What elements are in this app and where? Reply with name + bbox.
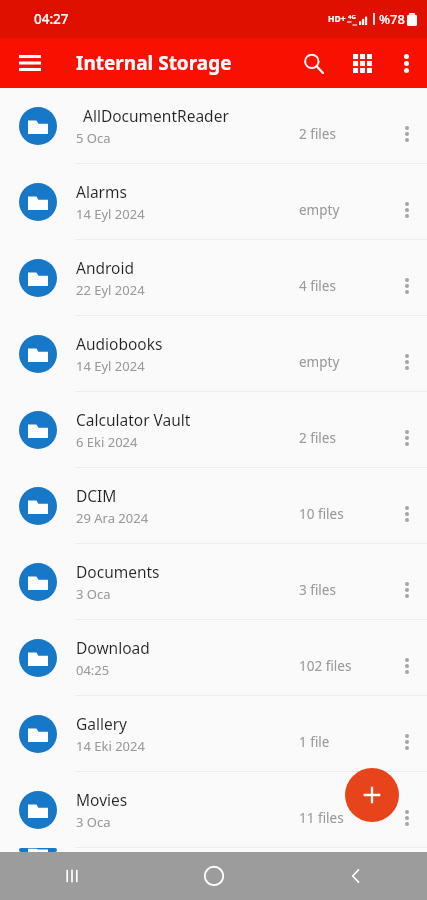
staticText: 102 files [299,657,352,675]
button[interactable]: Search [291,41,335,85]
button[interactable]: Item options [387,620,427,695]
staticText: 6 Eki 2024 [76,433,138,451]
staticText: Internal Storage [76,50,232,76]
staticText: empty [299,201,340,219]
button[interactable]: Audiobooks [0,316,427,391]
button[interactable]: Item options [387,88,427,163]
button[interactable]: Recents [0,852,143,900]
staticText: 3 Oca [76,585,111,603]
staticText: 3 Oca [76,813,111,831]
button[interactable]: Android [0,240,427,315]
staticText: 4G [348,13,356,21]
button[interactable]: Item options [387,468,427,543]
button[interactable]: Item options [387,392,427,467]
staticText: 2 files [299,125,336,143]
staticText: Documents [76,561,160,582]
staticText: 04:27 [34,10,69,28]
staticText: 4 files [299,277,336,295]
staticText: Audiobooks [76,333,163,354]
button[interactable]: Calculator Vault [0,392,427,467]
button[interactable]: Alarms [0,164,427,239]
staticText: 11 files [299,809,344,827]
staticText: 5 Oca [76,129,111,147]
button[interactable]: AllDocumentReader [0,88,427,163]
button[interactable]: Item options [387,544,427,619]
button[interactable]: Movies [0,772,427,847]
staticText: 3 files [299,581,336,599]
button[interactable]: More options [385,42,427,84]
button[interactable]: Gallery [0,696,427,771]
staticText: 22 Eyl 2024 [76,281,145,299]
staticText: Movies [76,789,128,810]
button[interactable]: Open navigation drawer [10,43,50,83]
button[interactable]: Music [0,848,427,852]
staticText: %78 [379,10,405,28]
staticText: 29 Ara 2024 [76,509,149,527]
staticText: 14 Eyl 2024 [76,205,145,223]
staticText: 14 Eki 2024 [76,737,145,755]
button[interactable]: Item options [387,164,427,239]
staticText: AllDocumentReader [83,105,229,126]
button[interactable]: Documents [0,544,427,619]
staticText: 1 file [299,733,330,751]
staticText: 14 Eyl 2024 [76,357,145,375]
button[interactable]: Grid view [340,41,384,85]
staticText: DCIM [76,485,117,506]
staticText: empty [299,353,340,371]
staticText: 10 files [299,505,344,523]
button[interactable]: Item options [387,772,427,847]
staticText: HD+ [328,13,346,25]
button[interactable]: Download [0,620,427,695]
staticText: Download [76,637,150,658]
staticText: Android [76,257,135,278]
button[interactable]: DCIM [0,468,427,543]
button[interactable]: Back [285,852,427,900]
staticText: 2 files [299,429,336,447]
button[interactable]: Item options [387,240,427,315]
staticText: Alarms [76,181,127,202]
staticText: Calculator Vault [76,409,191,430]
button[interactable]: Home [143,852,285,900]
staticText: 04:25 [76,661,110,679]
button[interactable]: Item options [387,316,427,391]
staticText: Gallery [76,713,128,734]
button[interactable]: Item options [387,696,427,771]
button[interactable]: Add [345,768,399,822]
